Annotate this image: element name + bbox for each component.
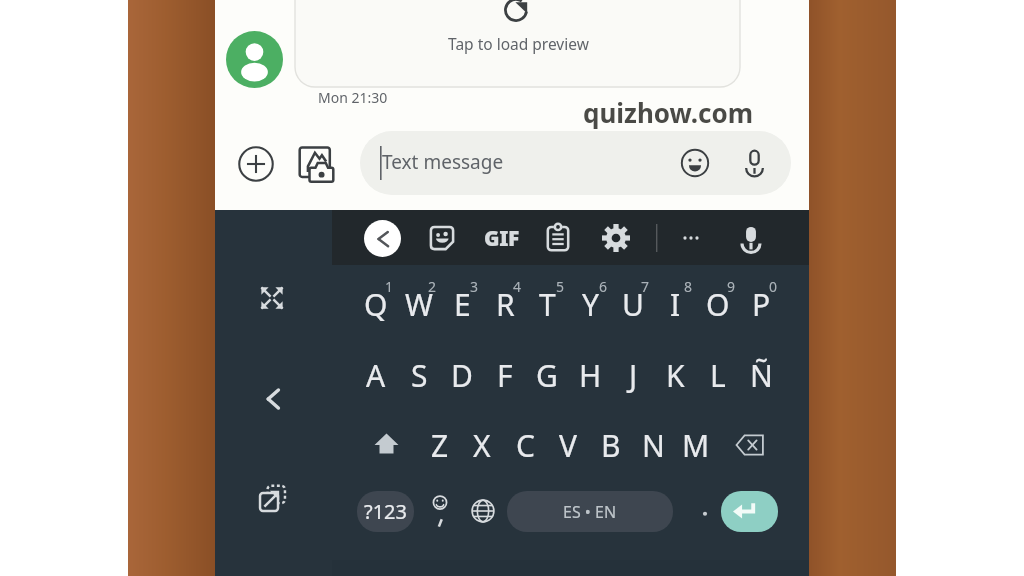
staticText: Text message (382, 149, 504, 175)
staticText: GIF (484, 224, 519, 253)
button[interactable]: Change language (470, 498, 496, 524)
staticText: F (497, 355, 513, 396)
staticText: T (539, 284, 556, 325)
button[interactable]: X (461, 419, 503, 471)
button[interactable]: Period (683, 491, 727, 532)
staticText: 7 (641, 277, 650, 294)
button[interactable]: Stickers (427, 223, 457, 253)
button[interactable]: Ñ (740, 349, 782, 401)
button[interactable]: I (654, 278, 696, 330)
staticText: R (496, 284, 515, 325)
button[interactable]: F (484, 349, 526, 401)
button[interactable]: Gallery (299, 144, 334, 183)
button[interactable]: A (355, 349, 397, 401)
button[interactable]: Voice message (739, 147, 770, 178)
staticText: X (473, 425, 491, 466)
staticText: quizhow.com (583, 95, 754, 130)
staticText: V (559, 425, 577, 466)
staticText: H (579, 355, 602, 396)
button[interactable]: N (632, 419, 674, 471)
staticText: Z (431, 425, 449, 466)
button[interactable]: Emoji (680, 148, 710, 178)
button[interactable]: Back (258, 384, 288, 414)
button[interactable]: ES • EN (507, 491, 673, 532)
staticText: W (405, 284, 433, 325)
staticText: C (516, 425, 535, 466)
button[interactable] (295, 0, 740, 87)
staticText: N (642, 425, 665, 466)
staticText: 5 (556, 277, 565, 294)
button[interactable]: Pop out keyboard (258, 484, 287, 513)
button[interactable]: H (569, 349, 611, 401)
staticText: J (629, 355, 638, 396)
button[interactable]: Settings (601, 223, 631, 253)
button[interactable]: E (441, 278, 483, 330)
button[interactable]: Enter (721, 491, 778, 532)
staticText: Ñ (750, 355, 773, 396)
staticText: I (670, 284, 681, 325)
staticText: G (536, 355, 558, 396)
staticText: U (622, 284, 644, 325)
staticText: K (666, 355, 685, 396)
staticText: 0 (769, 277, 778, 294)
staticText: Y (582, 284, 599, 325)
button[interactable]: P (740, 278, 782, 330)
button[interactable]: More options (676, 223, 706, 253)
staticText: 2 (428, 277, 437, 294)
staticText: E (454, 284, 471, 325)
button[interactable]: GIF (481, 221, 522, 255)
button[interactable]: M (675, 419, 717, 471)
button[interactable]: U (612, 278, 654, 330)
button[interactable]: C (504, 419, 546, 471)
staticText: ?123 (364, 498, 407, 525)
staticText: B (601, 425, 621, 466)
staticText: O (706, 284, 730, 325)
staticText: Mon 21:30 (318, 88, 388, 107)
button[interactable]: T (526, 278, 568, 330)
staticText: Q (364, 284, 388, 325)
staticText: 3 (470, 277, 479, 294)
button[interactable]: Q (355, 278, 397, 330)
staticText: A (366, 355, 386, 396)
staticText: L (710, 355, 726, 396)
button[interactable]: O (697, 278, 739, 330)
button[interactable]: Clipboard (543, 223, 573, 253)
button[interactable]: V (547, 419, 589, 471)
button[interactable]: Y (569, 278, 611, 330)
button[interactable]: Emoji and comma (424, 493, 456, 531)
staticText: P (752, 284, 771, 325)
button[interactable]: Voice input (736, 223, 766, 253)
staticText: M (682, 425, 710, 466)
staticText: 6 (599, 277, 608, 294)
staticText: 4 (513, 277, 522, 294)
staticText: ES • EN (563, 501, 617, 523)
staticText: S (411, 355, 428, 396)
button[interactable]: ?123 (357, 491, 414, 532)
button[interactable]: Back to conversation (364, 220, 401, 257)
button[interactable]: J (612, 349, 654, 401)
button[interactable]: Contact avatar (226, 31, 283, 88)
staticText: Tap to load preview (448, 33, 589, 54)
button[interactable]: Z (419, 419, 461, 471)
button[interactable]: G (526, 349, 568, 401)
button[interactable]: D (441, 349, 483, 401)
button[interactable]: Expand (258, 284, 286, 312)
button[interactable]: L (697, 349, 739, 401)
button[interactable]: Backspace (735, 433, 765, 457)
button[interactable]: W (398, 278, 440, 330)
button[interactable]: S (398, 349, 440, 401)
button[interactable]: Text message (360, 131, 791, 195)
staticText: D (451, 355, 473, 396)
button[interactable]: R (484, 278, 526, 330)
button[interactable]: B (590, 419, 632, 471)
staticText: 8 (684, 277, 693, 294)
button[interactable]: Add attachment (238, 146, 274, 182)
button[interactable]: Shift (374, 431, 399, 456)
staticText: 1 (385, 277, 394, 294)
button[interactable]: K (654, 349, 696, 401)
other: Reload preview (504, 0, 528, 22)
staticText: 9 (727, 277, 736, 294)
